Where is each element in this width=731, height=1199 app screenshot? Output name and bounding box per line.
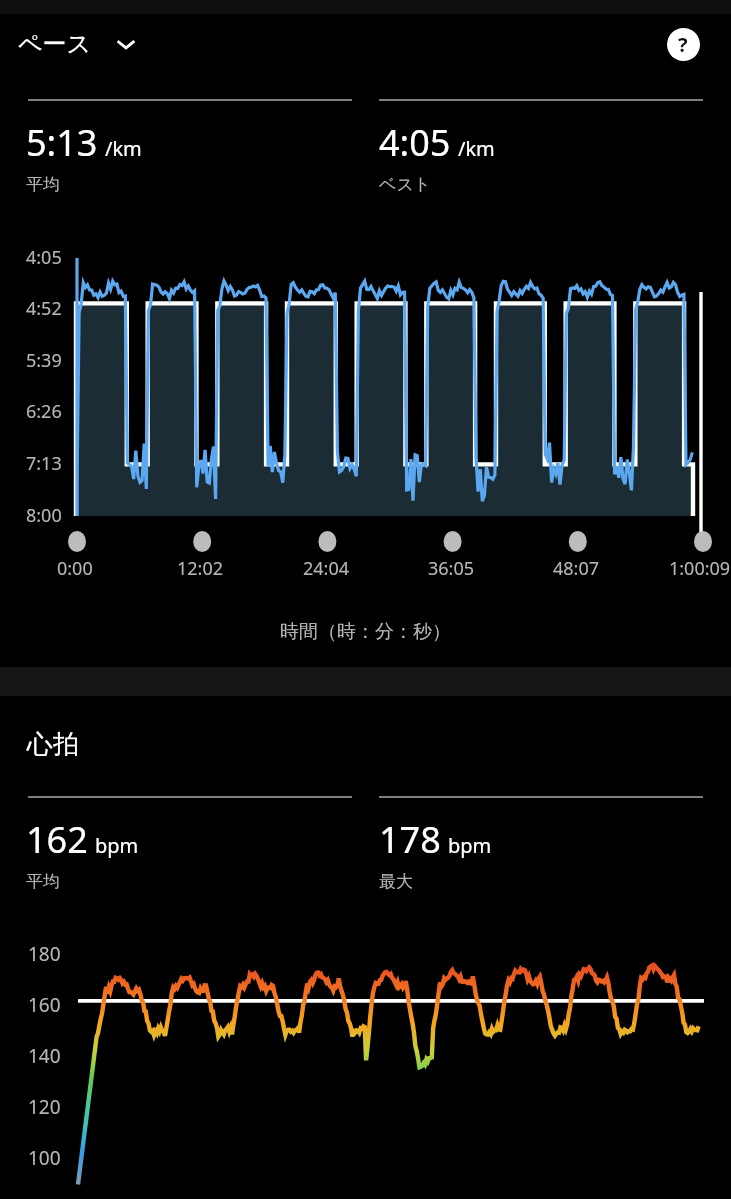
staticText: 5:39: [26, 348, 62, 373]
staticText: /km: [105, 135, 142, 162]
staticText: ペース: [18, 29, 92, 59]
staticText: 178: [379, 815, 441, 864]
staticText: 180: [28, 941, 61, 967]
staticText: 140: [28, 1043, 61, 1069]
staticText: 4:52: [26, 296, 62, 321]
staticText: 12:02: [177, 556, 224, 581]
staticText: 平均: [26, 174, 60, 195]
staticText: 心拍: [27, 728, 79, 761]
staticText: 5:13: [26, 118, 98, 167]
staticText: 時間（時：分：秒）: [280, 620, 451, 644]
staticText: bpm: [448, 832, 492, 859]
staticText: ?: [678, 31, 688, 58]
staticText: 最大: [379, 871, 413, 892]
staticText: 1:00:09: [669, 556, 731, 581]
staticText: 平均: [26, 871, 60, 892]
button[interactable]: ペース: [18, 20, 140, 68]
staticText: 6:26: [26, 399, 62, 424]
staticText: 24:04: [303, 556, 350, 581]
staticText: 0:00: [57, 556, 93, 581]
staticText: 162: [26, 815, 88, 864]
staticText: 120: [28, 1094, 61, 1120]
staticText: 7:13: [26, 451, 62, 476]
staticText: 160: [28, 992, 61, 1018]
staticText: bpm: [95, 832, 139, 859]
staticText: 36:05: [428, 556, 475, 581]
staticText: 4:05: [26, 245, 62, 270]
staticText: 8:00: [26, 503, 62, 528]
staticText: 100: [28, 1145, 61, 1171]
staticText: ベスト: [379, 174, 432, 195]
button[interactable]: ヘルプ: [661, 22, 705, 66]
staticText: 48:07: [553, 556, 600, 581]
staticText: 4:05: [379, 118, 451, 167]
staticText: /km: [458, 135, 495, 162]
